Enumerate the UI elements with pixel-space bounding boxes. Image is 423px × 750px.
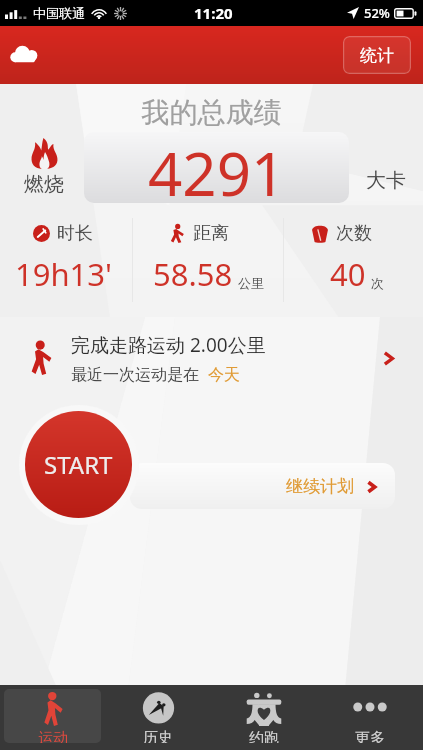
staticText: 我的总成绩	[0, 95, 423, 130]
staticText: 40	[330, 253, 366, 295]
staticText: 完成走路运动 2.00公里	[71, 332, 266, 358]
staticText: 最近一次运动是在	[71, 365, 199, 385]
staticText: 次数	[336, 222, 372, 245]
staticText: 运动	[38, 729, 68, 743]
staticText: 次	[371, 275, 384, 291]
button[interactable]: 完成走路运动 2.00公里	[0, 317, 423, 389]
button[interactable]: 历史	[109, 689, 207, 743]
button[interactable]: 继续计划	[130, 463, 395, 509]
staticText: 19h13'	[15, 253, 113, 295]
staticText: 今天	[208, 365, 240, 385]
staticText: 11:20	[194, 3, 233, 23]
button[interactable]: 约跑	[215, 689, 313, 743]
staticText: 更多	[355, 729, 385, 743]
button[interactable]: 距离	[133, 218, 283, 302]
button[interactable]: 时长	[0, 218, 128, 302]
staticText: 公里	[238, 275, 264, 291]
staticText: 继续计划	[286, 476, 354, 497]
staticText: 中国联通	[33, 5, 85, 21]
button[interactable]: START	[25, 411, 132, 518]
button[interactable]: Cloud sync	[8, 41, 44, 69]
staticText: 统计	[360, 45, 394, 66]
staticText: 燃烧	[24, 172, 64, 197]
staticText: 距离	[193, 222, 229, 245]
button[interactable]: 运动	[4, 689, 101, 743]
button[interactable]: 统计	[343, 36, 411, 74]
staticText: START	[44, 448, 113, 481]
staticText: 时长	[57, 222, 93, 245]
staticText: 约跑	[249, 729, 279, 743]
staticText: 58.58	[153, 253, 233, 295]
staticText: 大卡	[366, 168, 406, 193]
staticText: 4291	[148, 132, 286, 203]
button[interactable]: 更多	[321, 689, 419, 743]
staticText: 历史	[143, 729, 173, 743]
staticText: 52%	[364, 4, 390, 22]
button[interactable]: 次数	[284, 218, 423, 302]
